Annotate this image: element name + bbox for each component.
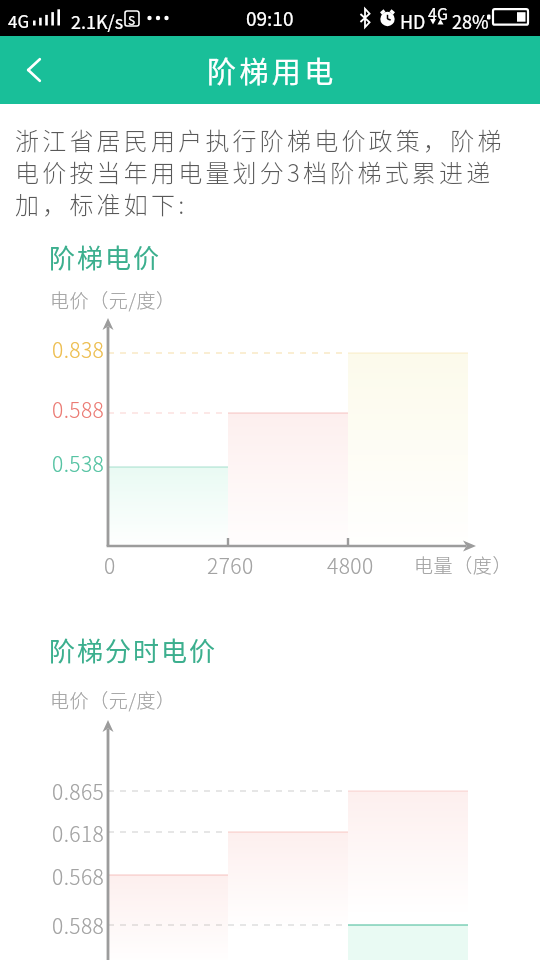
staticText: 0.838 <box>52 334 105 364</box>
staticText: 4G <box>8 8 30 33</box>
staticText: 浙江省居民用户执行阶梯电价政策，阶梯 电价按当年用电量划分3档阶梯式累进递 加，… <box>15 122 505 221</box>
staticText: S <box>128 11 136 26</box>
staticText: 0.568 <box>52 861 105 891</box>
staticText: 2760 <box>207 550 254 580</box>
staticText: 电价（元/度） <box>50 286 176 314</box>
staticText: 0.588 <box>52 910 105 940</box>
staticText: 阶梯分时电价 <box>49 631 218 669</box>
staticText: 电价（元/度） <box>50 686 176 714</box>
staticText: 4G <box>428 1 448 24</box>
staticText: 电量（度） <box>414 551 513 579</box>
staticText: 0 <box>104 550 116 580</box>
staticText: 阶梯用电 <box>207 49 337 91</box>
staticText: 4800 <box>327 550 374 580</box>
button[interactable]: Back <box>3 36 65 104</box>
staticText: 阶梯电价 <box>49 238 162 276</box>
staticText: 28% <box>452 8 489 34</box>
staticText: 0.588 <box>52 394 105 424</box>
staticText: 0.865 <box>52 776 105 806</box>
staticText: 0.618 <box>52 818 105 848</box>
staticText: 2.1K/s <box>71 8 124 34</box>
staticText: 09:10 <box>246 4 294 32</box>
staticText: 0.538 <box>52 448 105 478</box>
staticText: HD <box>400 8 426 34</box>
